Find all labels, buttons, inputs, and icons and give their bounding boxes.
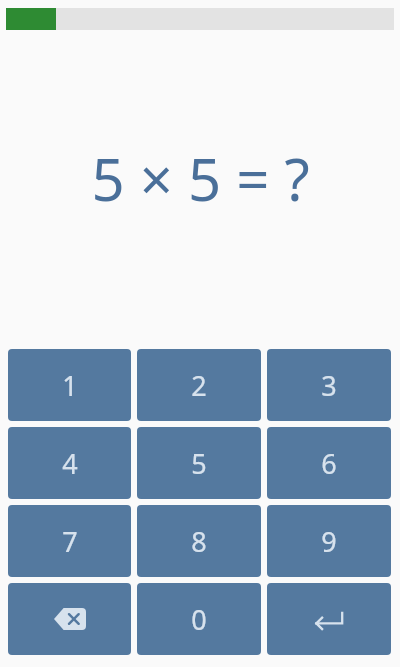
staticText: 2 <box>191 367 207 404</box>
button[interactable]: 4 <box>8 427 131 499</box>
button[interactable]: 9 <box>267 505 391 577</box>
staticText: 6 <box>321 445 337 482</box>
staticText: 1 <box>62 367 78 404</box>
staticText: 7 <box>62 523 78 560</box>
staticText: 5 <box>191 445 207 482</box>
button[interactable]: 6 <box>267 427 391 499</box>
staticText: 5 × 5 = ? <box>91 139 310 218</box>
staticText: 0 <box>191 601 207 638</box>
staticText: 9 <box>321 523 337 560</box>
button[interactable]: 5 <box>137 427 261 499</box>
staticText: 4 <box>62 445 78 482</box>
button[interactable]: 7 <box>8 505 131 577</box>
staticText: 3 <box>321 367 337 404</box>
staticText: 8 <box>191 523 207 560</box>
button[interactable]: 1 <box>8 349 131 421</box>
button[interactable]: 2 <box>137 349 261 421</box>
button[interactable]: 3 <box>267 349 391 421</box>
button[interactable]: Backspace <box>8 583 131 655</box>
button[interactable]: 8 <box>137 505 261 577</box>
button[interactable]: Enter <box>267 583 391 655</box>
button[interactable]: 0 <box>137 583 261 655</box>
